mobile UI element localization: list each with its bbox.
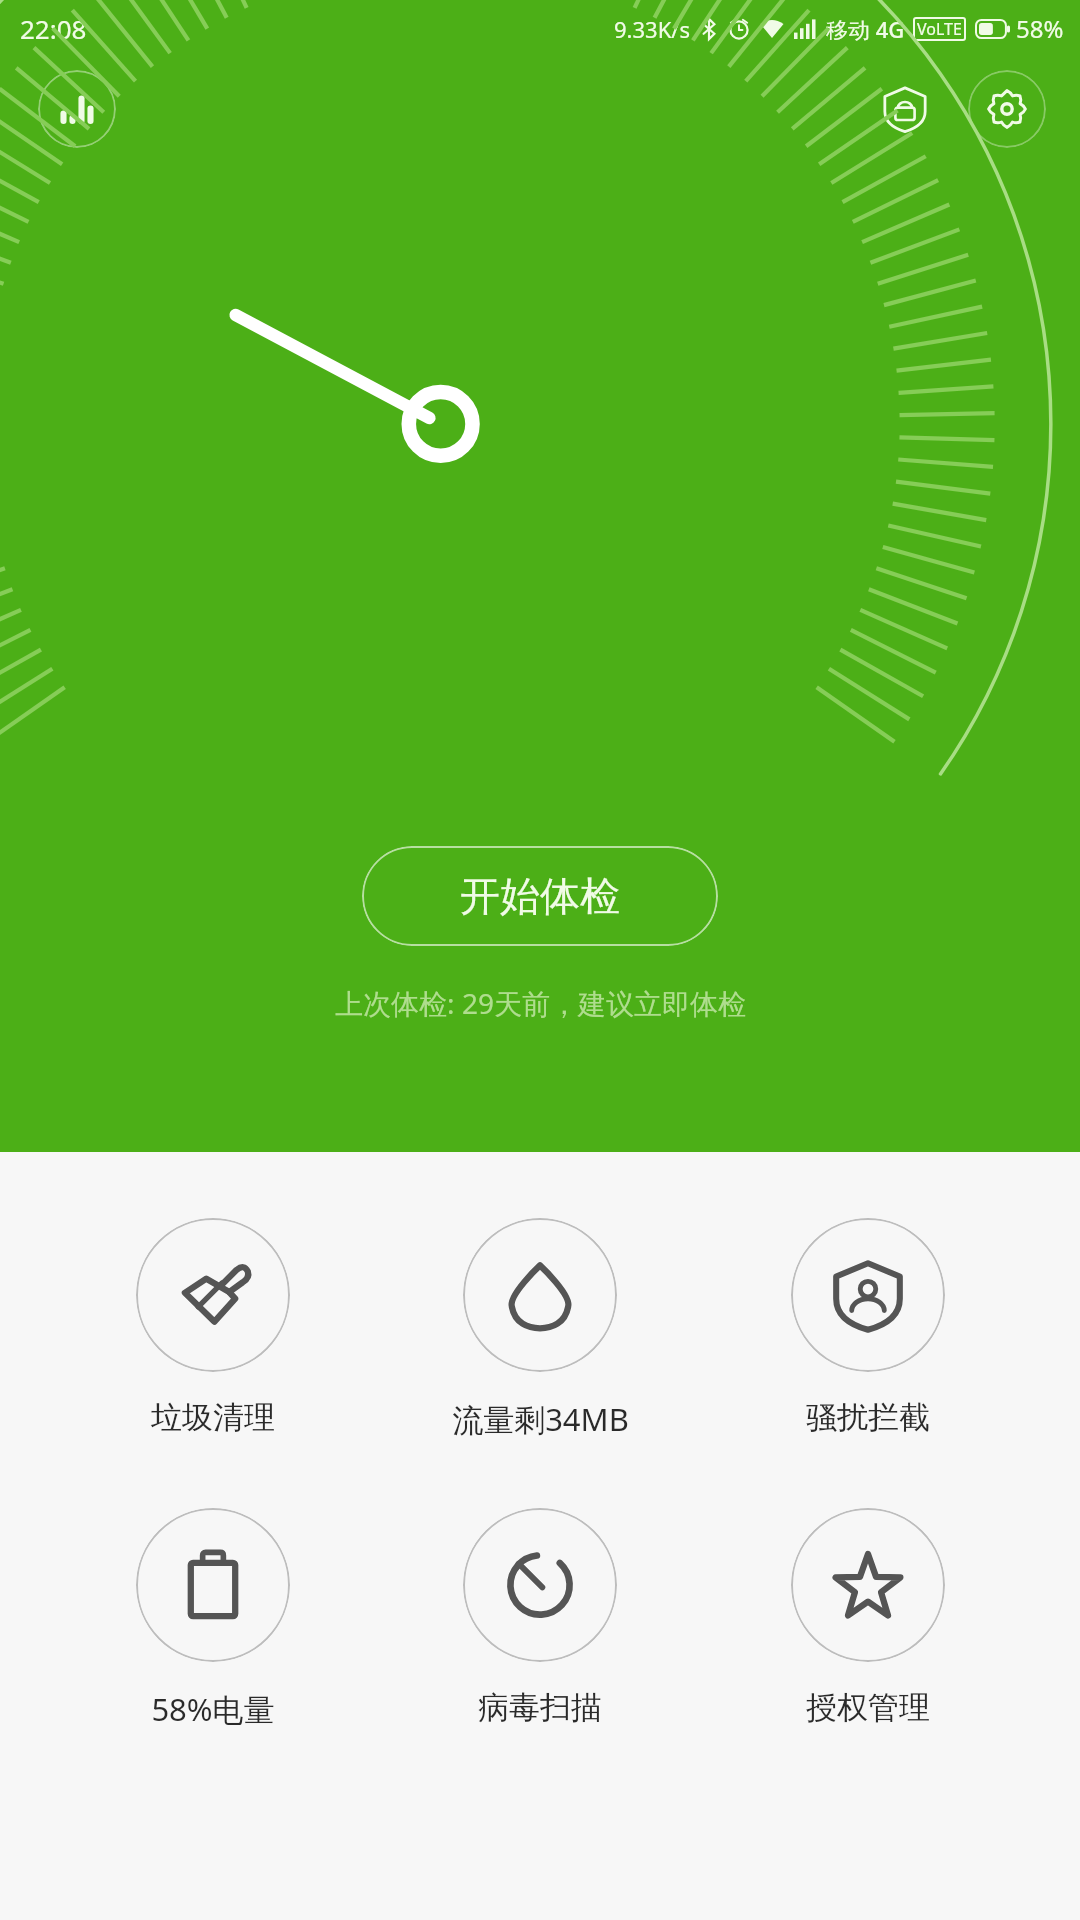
staticText: 开始体检	[460, 871, 620, 921]
staticText: 移动 4G	[826, 14, 905, 44]
button[interactable]: 垃圾清理	[98, 1214, 328, 1441]
button[interactable]: 流量剩34MB	[425, 1214, 655, 1444]
button[interactable]: 58%电量	[98, 1504, 328, 1734]
staticText: 授权管理	[806, 1688, 930, 1727]
staticText: 9.33K/s	[614, 14, 690, 44]
button[interactable]: 病毒扫描	[425, 1504, 655, 1731]
button[interactable]: Settings	[968, 70, 1046, 148]
staticText: 病毒扫描	[478, 1688, 602, 1727]
staticText: 上次体检: 29天前，建议立即体检	[335, 984, 746, 1022]
button[interactable]: 骚扰拦截	[753, 1214, 983, 1441]
staticText: 58%	[1016, 12, 1064, 45]
button[interactable]: 授权管理	[753, 1504, 983, 1731]
staticText: 流量剩34MB	[452, 1398, 629, 1440]
staticText: VoLTE	[917, 18, 962, 40]
staticText: 58%电量	[151, 1688, 275, 1730]
staticText: 骚扰拦截	[806, 1398, 930, 1437]
staticText: 垃圾清理	[151, 1398, 275, 1437]
button[interactable]: Security	[866, 70, 944, 148]
button[interactable]: 开始体检	[362, 846, 718, 946]
staticText: 22:08	[20, 11, 87, 46]
button[interactable]: Statistics	[38, 70, 116, 148]
